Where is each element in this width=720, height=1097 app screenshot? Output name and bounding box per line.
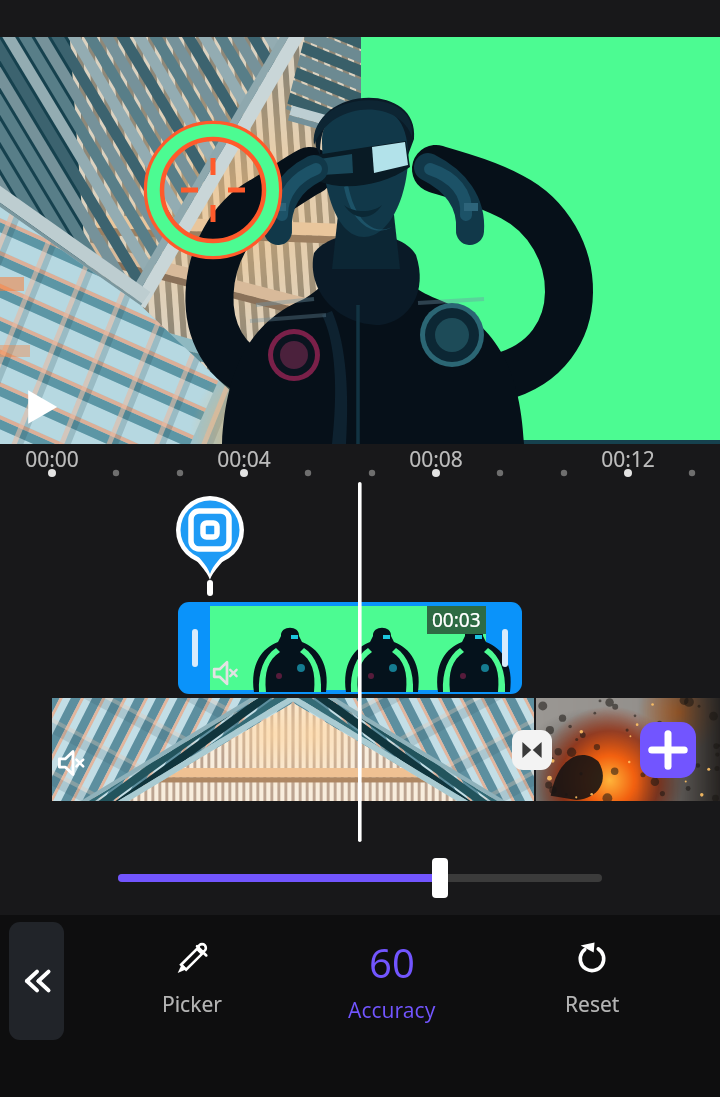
staticText: Reset [565, 990, 620, 1019]
button[interactable]: Picker [92, 915, 292, 1040]
button[interactable]: Add clip [640, 722, 696, 778]
staticText: 00:04 [184, 445, 304, 474]
staticText: 00:12 [568, 445, 688, 474]
button[interactable]: Play [22, 385, 66, 429]
staticText: Picker [162, 990, 222, 1019]
button[interactable]: Keyframe marker [176, 494, 244, 564]
button[interactable]: Accuracy slider [110, 854, 610, 902]
staticText: 00:00 [0, 445, 112, 474]
button[interactable]: Reset [492, 915, 692, 1040]
button[interactable]: Collapse panel [9, 922, 64, 1040]
staticText: Accuracy [348, 996, 436, 1025]
button[interactable]: Transition [512, 730, 552, 770]
button[interactable]: Selected overlay clip, 00:03 [178, 602, 522, 694]
staticText: 60 [369, 935, 415, 989]
button[interactable]: 60 [292, 915, 492, 1040]
staticText: 00:03 [432, 607, 481, 633]
staticText: 00:08 [376, 445, 496, 474]
button[interactable]: Video clip 1 [52, 698, 535, 801]
button[interactable]: Video clip 2 [537, 698, 720, 801]
